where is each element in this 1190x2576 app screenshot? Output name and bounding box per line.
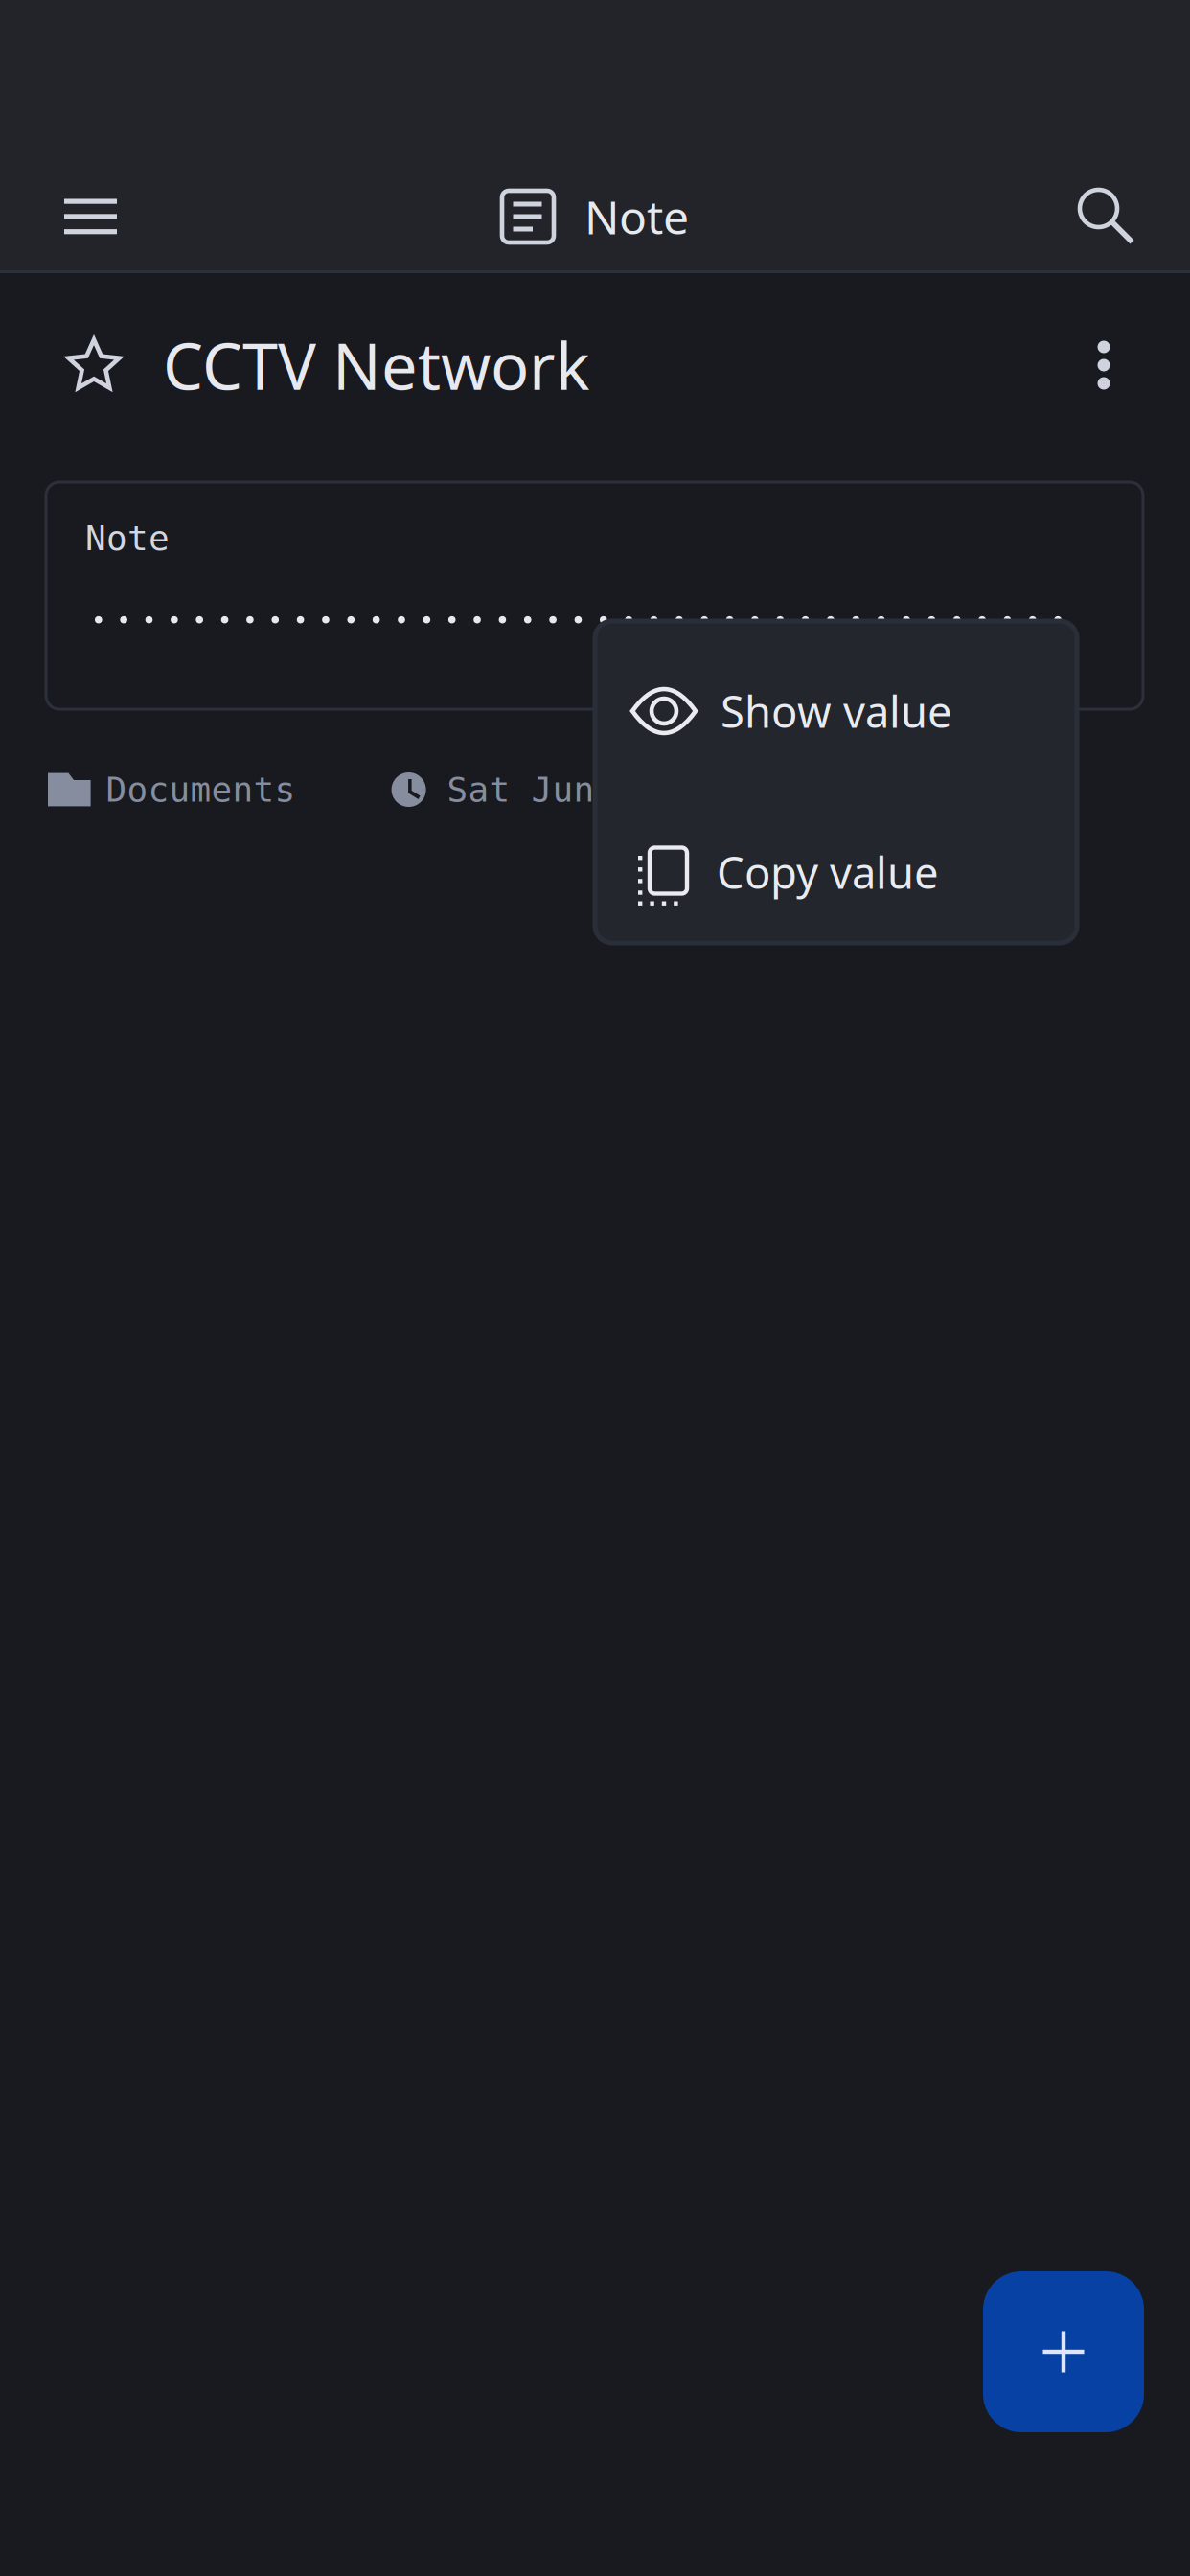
staticText: CCTV Network: [163, 323, 590, 407]
button[interactable]: Copy value: [595, 801, 1077, 943]
staticText: Show value: [721, 682, 952, 740]
button[interactable]: Add item: [983, 2271, 1144, 2432]
staticText: Copy value: [717, 843, 939, 901]
staticText: Note: [584, 186, 689, 247]
button[interactable]: Menu: [43, 163, 138, 270]
button[interactable]: Favourite: [65, 319, 123, 411]
button[interactable]: Show value: [595, 621, 1077, 801]
staticText: Sat Jun 14: [447, 770, 658, 809]
button[interactable]: Search: [1053, 163, 1160, 270]
staticText: Documents: [106, 770, 296, 809]
staticText: Note: [85, 518, 170, 558]
button[interactable]: More options: [1079, 319, 1129, 411]
